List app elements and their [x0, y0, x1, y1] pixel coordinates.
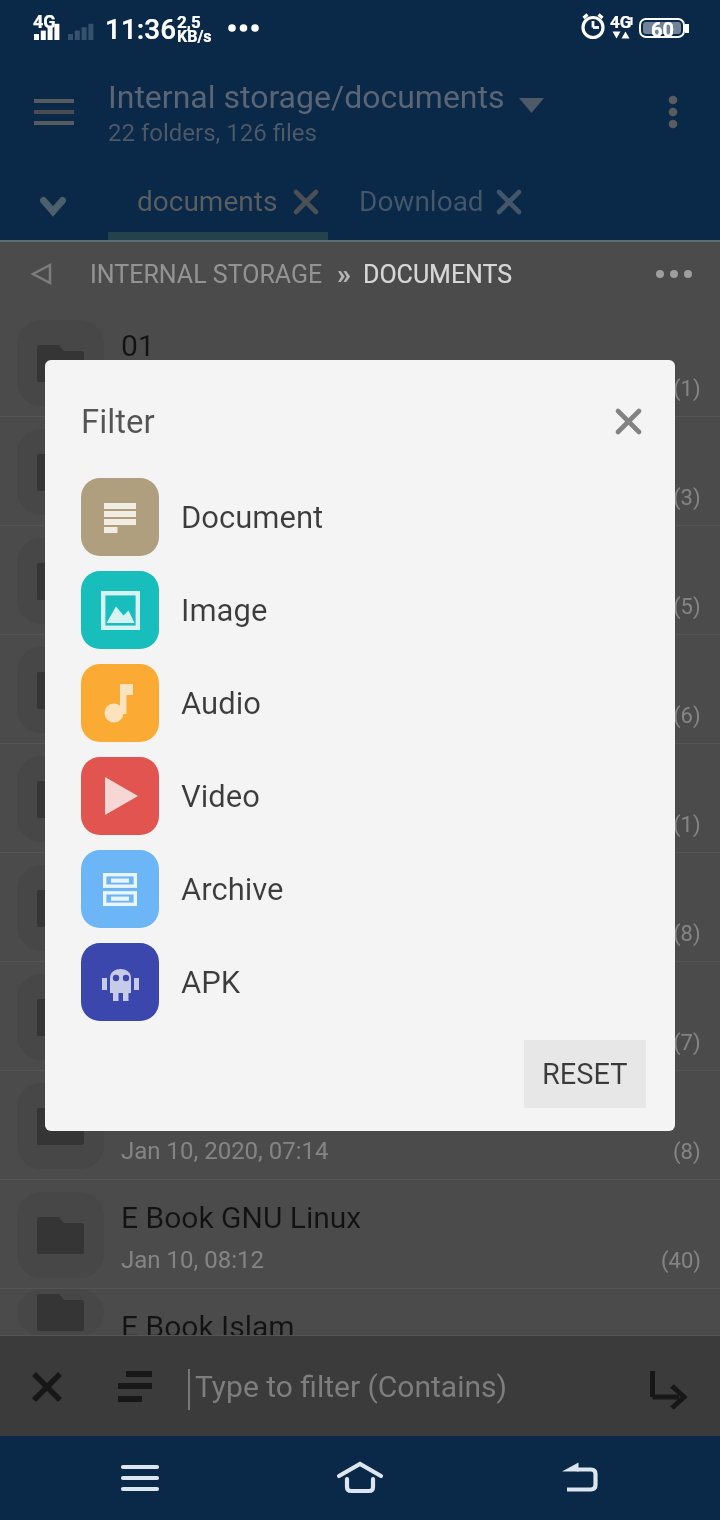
button[interactable]: Submit [640, 1360, 696, 1416]
staticText: Image [181, 592, 268, 628]
staticText: E Book Islam [121, 1309, 295, 1344]
staticText: 4G [33, 11, 56, 32]
staticText: 60 [651, 18, 674, 41]
staticText: Jan 10, 2020, 07:14 [121, 483, 329, 511]
staticText: Book [121, 546, 190, 581]
staticText: documents [137, 185, 278, 218]
button[interactable]: Book [0, 526, 720, 635]
button[interactable]: More options [643, 82, 703, 142]
staticText: Document [121, 873, 259, 908]
staticText: (1) [673, 812, 701, 838]
staticText: (6) [673, 703, 701, 729]
button[interactable]: Document [45, 470, 675, 563]
staticText: Course [121, 655, 216, 690]
staticText: (8) [673, 1139, 701, 1165]
staticText: Jan 10, 2020, 07:14 [121, 701, 329, 729]
staticText: Video [181, 778, 260, 814]
staticText: Type to filter (Contains) [195, 1369, 507, 1404]
button[interactable]: Close search [20, 1360, 73, 1413]
staticText: Filter [81, 402, 155, 441]
button[interactable]: E Book [0, 962, 720, 1071]
staticText: (8) [673, 921, 701, 947]
staticText: Jan 10, 08:12 [121, 1355, 264, 1383]
staticText: Jan 10, 2020, 07:14 [121, 1137, 329, 1165]
button[interactable]: Audio Book [0, 417, 720, 526]
staticText: DOCUMENTS [363, 260, 513, 289]
button[interactable]: APK [45, 935, 675, 1028]
button[interactable]: Image [45, 563, 675, 656]
staticText: (5) [673, 594, 701, 620]
staticText: Internal storage/documents [108, 78, 505, 116]
button[interactable]: Course [0, 635, 720, 744]
staticText: Jan 10, 2020, 07:14 [121, 810, 329, 838]
staticText: Download [359, 185, 484, 218]
staticText: Data [121, 764, 184, 799]
staticText: Jan 10, 08:12 [121, 1246, 264, 1274]
button[interactable]: Document [0, 853, 720, 962]
staticText: INTERNAL STORAGE [90, 260, 323, 289]
staticText: 11:36 [105, 13, 177, 46]
staticText: Jan 10, 2020, 07:14 [121, 919, 329, 947]
staticText: E Book GNU Linux [121, 1200, 362, 1235]
staticText: 4G [610, 12, 632, 32]
button[interactable]: Back [548, 1446, 612, 1510]
button[interactable]: Home [328, 1446, 392, 1510]
staticText: 1 [628, 15, 635, 28]
staticText: (40) [661, 1248, 701, 1274]
button[interactable]: Expand tabs [22, 175, 84, 237]
staticText: Document [181, 499, 324, 535]
button[interactable]: E Book Islam [0, 1289, 720, 1336]
button[interactable]: 01 [0, 308, 720, 417]
button[interactable]: Data [0, 744, 720, 853]
button[interactable]: Archive [45, 842, 675, 935]
button[interactable]: E Book GNU Linux [0, 1180, 720, 1289]
button[interactable]: Audio [45, 656, 675, 749]
staticText: KB/s [177, 27, 212, 46]
staticText: 2,5 [177, 12, 201, 32]
staticText: 01 [121, 328, 155, 363]
staticText: 22 folders, 126 files [108, 119, 317, 147]
button[interactable]: E Book C [0, 1071, 720, 1180]
button[interactable]: Recents [108, 1446, 172, 1510]
button[interactable]: Close [597, 390, 659, 452]
staticText: Audio [181, 685, 261, 721]
staticText: Jan 10, 2020, 07:14 [121, 592, 329, 620]
staticText: RESET [542, 1057, 628, 1091]
staticText: (1) [673, 376, 701, 402]
staticText: E Book [121, 982, 214, 1017]
staticText: » [337, 258, 351, 291]
button[interactable]: Video [45, 749, 675, 842]
staticText: APK [181, 964, 241, 1000]
button[interactable]: Menu [22, 80, 86, 144]
button[interactable]: Filter options [108, 1360, 161, 1413]
button[interactable]: RESET [524, 1040, 646, 1108]
staticText: (7) [673, 1030, 701, 1056]
staticText: Archive [181, 871, 284, 907]
staticText: (3) [673, 485, 701, 511]
